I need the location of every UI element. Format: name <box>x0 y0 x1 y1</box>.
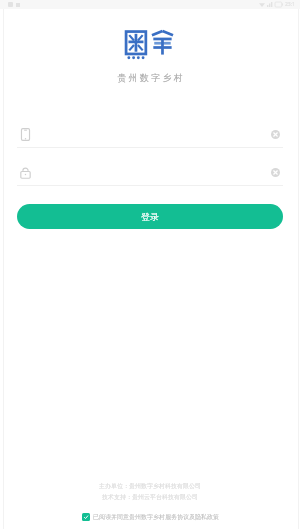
staticText: 主办单位：贵州数字乡村科技有限公司 <box>99 482 201 490</box>
other: Agree to terms checkbox <box>82 513 90 521</box>
button[interactable]: Phone number <box>17 121 283 147</box>
staticText: 登录 <box>141 211 159 222</box>
button[interactable]: Agree to terms checkbox <box>0 513 300 521</box>
staticText: 已阅读并同意贵州数字乡村服务协议及隐私政策 <box>93 513 219 521</box>
staticText: 23:1 <box>285 1 295 8</box>
button[interactable]: Clear <box>267 164 283 180</box>
button[interactable]: Clear <box>267 126 283 142</box>
staticText: 技术支持：贵州云平台科技有限公司 <box>102 493 198 501</box>
button[interactable]: Password <box>17 159 283 185</box>
other: Password <box>17 164 33 180</box>
staticText: 贵 州 数 字 乡 村 <box>117 71 183 83</box>
button[interactable]: 登录 <box>17 204 283 229</box>
other: Phone number <box>17 126 33 142</box>
